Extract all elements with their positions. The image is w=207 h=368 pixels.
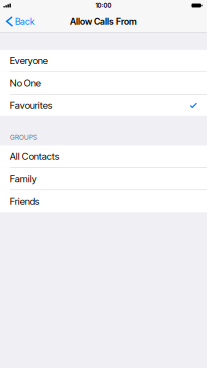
staticText: No One <box>10 77 41 89</box>
staticText: 10:00 <box>95 2 111 9</box>
button[interactable]: Friends <box>0 190 207 212</box>
button[interactable]: Everyone <box>0 50 207 72</box>
staticText: Back <box>15 16 35 27</box>
staticText: GROUPS <box>10 133 37 141</box>
staticText: Friends <box>10 195 40 207</box>
button[interactable]: No One <box>0 72 207 95</box>
button[interactable]: Back <box>0 11 39 32</box>
staticText: Favourites <box>10 99 53 111</box>
staticText: Family <box>10 173 37 184</box>
button[interactable]: All Contacts <box>0 145 207 168</box>
button[interactable]: Family <box>0 168 207 190</box>
staticText: Everyone <box>10 55 48 66</box>
staticText: All Contacts <box>10 150 60 162</box>
staticText: Allow Calls From <box>70 16 137 27</box>
button[interactable]: Favourites <box>0 95 207 116</box>
